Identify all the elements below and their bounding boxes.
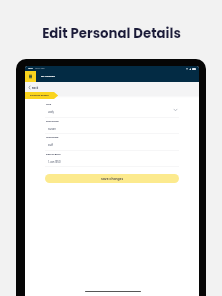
staticText: My Account [41, 75, 56, 78]
button[interactable]: Back [29, 85, 39, 90]
button[interactable]: First Name [45, 118, 179, 133]
staticText: Date of Birth [46, 153, 61, 156]
staticText: Last Name [46, 136, 59, 139]
button[interactable]: Open navigation menu [25, 71, 36, 82]
button[interactable]: Date of Birth [45, 151, 179, 166]
staticText: First Name [46, 120, 59, 123]
staticText: Lady [48, 110, 54, 114]
staticText: Duff [48, 143, 54, 147]
staticText: Save Changes [101, 177, 124, 181]
button[interactable]: Save Changes [45, 174, 179, 183]
staticText: Susan [48, 127, 56, 131]
button[interactable]: Last Name [45, 134, 179, 149]
staticText: Thu, 2 Nov [35, 67, 45, 70]
staticText: Personal Details [30, 94, 49, 97]
staticText: Edit Personal Details [42, 24, 181, 43]
staticText: 1 Jan 1950 [48, 160, 61, 164]
staticText: 19:39 [28, 67, 33, 70]
button[interactable]: Title [45, 101, 179, 116]
staticText: Title [46, 103, 52, 106]
staticText: Back [32, 86, 39, 89]
button[interactable]: Personal Details [25, 92, 199, 99]
